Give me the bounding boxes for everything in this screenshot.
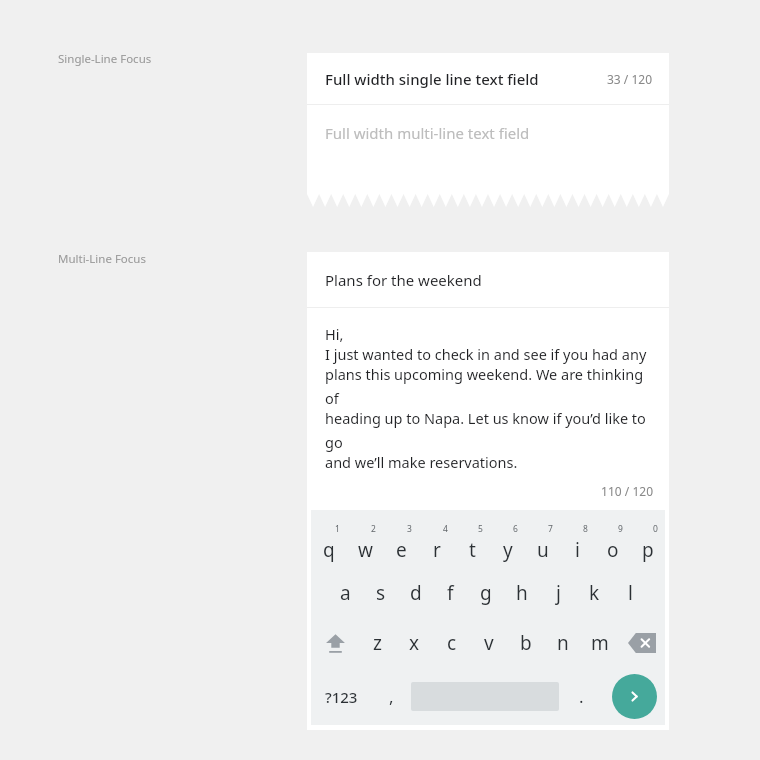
button[interactable]: c [433, 618, 470, 668]
staticText: . [579, 685, 584, 708]
staticText: p [642, 537, 654, 563]
staticText: Multi-Line Focus [58, 251, 146, 267]
staticText: x [409, 630, 420, 656]
staticText: and we’ll make reservations. [325, 452, 518, 472]
button[interactable]: 7 [525, 522, 560, 568]
staticText: h [516, 580, 528, 606]
button[interactable]: f [433, 568, 468, 618]
staticText: 5 [478, 523, 483, 535]
staticText: 4 [443, 523, 448, 535]
button[interactable]: Backspace [618, 618, 665, 668]
staticText: 9 [618, 523, 623, 535]
staticText: q [323, 537, 335, 563]
staticText: plans this upcoming weekend. We are thin… [325, 364, 653, 408]
staticText: Full width multi-line text field [325, 123, 530, 143]
staticText: b [520, 630, 532, 656]
button[interactable]: n [544, 618, 581, 668]
staticText: z [373, 630, 382, 656]
button[interactable]: 3 [383, 522, 419, 568]
staticText: c [447, 630, 457, 656]
button[interactable]: Full width single line text field [307, 53, 669, 104]
button[interactable]: x [396, 618, 433, 668]
button[interactable]: , [371, 668, 411, 725]
staticText: r [433, 537, 441, 563]
staticText: Plans for the weekend [325, 270, 482, 290]
button[interactable]: k [576, 568, 612, 618]
staticText: 7 [548, 523, 553, 535]
staticText: d [410, 580, 422, 606]
staticText: w [358, 537, 373, 563]
staticText: t [469, 537, 476, 563]
button[interactable]: d [398, 568, 433, 618]
button[interactable]: z [359, 618, 396, 668]
button[interactable]: 0 [630, 522, 665, 568]
button[interactable]: Full width multi-line text field [307, 105, 669, 194]
staticText: j [556, 580, 561, 606]
staticText: g [480, 580, 492, 606]
staticText: a [340, 580, 351, 606]
staticText: k [589, 580, 600, 606]
staticText: 0 [653, 523, 658, 535]
staticText: Single-Line Focus [58, 51, 152, 67]
button[interactable]: 9 [595, 522, 630, 568]
staticText: 2 [371, 523, 376, 535]
button[interactable]: v [470, 618, 507, 668]
button[interactable]: ?123 [311, 668, 371, 725]
staticText: e [396, 537, 407, 563]
staticText: m [591, 630, 609, 656]
button[interactable]: 4 [419, 522, 455, 568]
button[interactable]: 1 [311, 522, 347, 568]
staticText: Hi, [325, 324, 344, 344]
button[interactable]: Plans for the weekend [307, 252, 669, 307]
staticText: u [537, 537, 549, 563]
staticText: 1 [335, 523, 340, 535]
button[interactable]: 8 [560, 522, 595, 568]
staticText: 6 [513, 523, 518, 535]
staticText: i [575, 537, 580, 563]
staticText: l [628, 580, 633, 606]
staticText: n [557, 630, 569, 656]
button[interactable]: . [559, 668, 603, 725]
button[interactable]: j [540, 568, 576, 618]
button[interactable]: m [581, 618, 618, 668]
staticText: heading up to Napa. Let us know if you’d… [325, 408, 653, 452]
staticText: f [447, 580, 454, 606]
staticText: 3 [407, 523, 412, 535]
button[interactable]: h [504, 568, 540, 618]
button[interactable]: s [363, 568, 398, 618]
staticText: I just wanted to check in and see if you… [325, 344, 647, 364]
staticText: 8 [583, 523, 588, 535]
button[interactable]: l [612, 568, 648, 618]
button[interactable]: g [468, 568, 504, 618]
button[interactable]: Send [612, 674, 657, 719]
button[interactable]: Shift [311, 618, 359, 668]
button[interactable]: 2 [347, 522, 383, 568]
staticText: v [484, 630, 494, 656]
staticText: , [389, 685, 394, 708]
button[interactable]: a [328, 568, 363, 618]
staticText: o [607, 537, 619, 563]
button[interactable]: 5 [455, 522, 490, 568]
staticText: s [376, 580, 386, 606]
staticText: 33 / 120 [607, 71, 653, 87]
staticText: Full width single line text field [325, 69, 539, 89]
button[interactable]: 6 [490, 522, 525, 568]
staticText: ?123 [325, 687, 358, 707]
staticText: y [503, 537, 513, 563]
button[interactable]: Hi, [307, 308, 669, 510]
button[interactable]: b [507, 618, 544, 668]
staticText: 110 / 120 [325, 483, 653, 499]
